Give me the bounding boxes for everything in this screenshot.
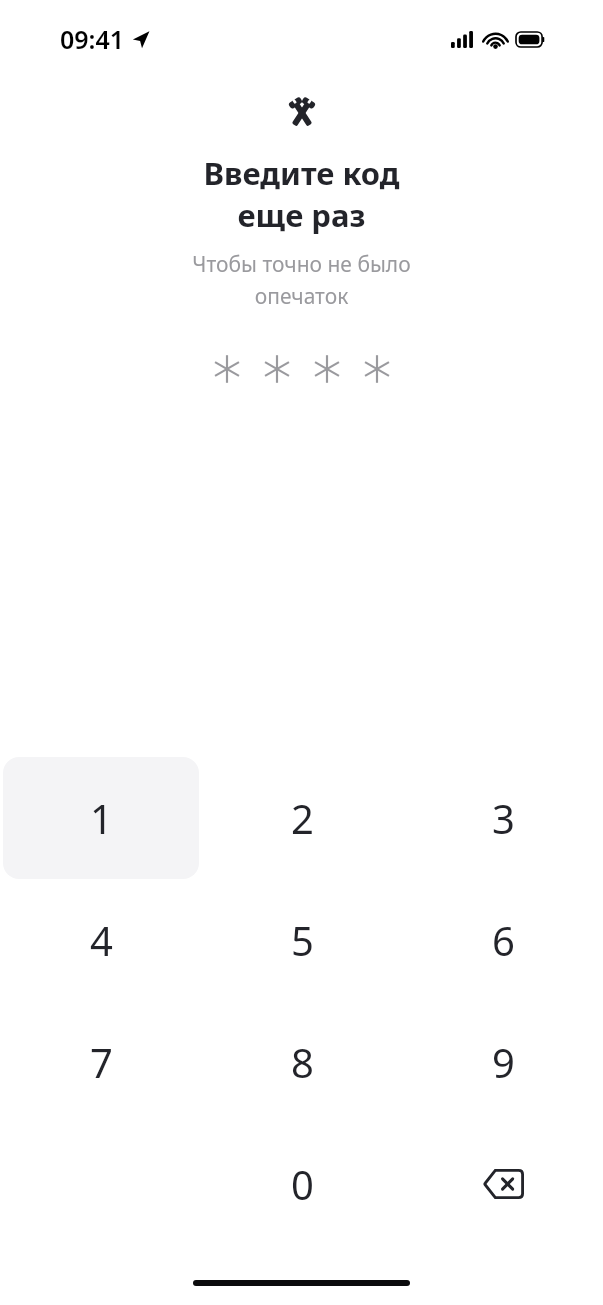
button[interactable]: 3 [405, 757, 601, 879]
staticText: 3 [492, 791, 515, 845]
button[interactable]: 5 [204, 879, 400, 1001]
button[interactable]: 9 [405, 1001, 601, 1123]
staticText: 5 [291, 913, 314, 967]
button[interactable]: Удалить [405, 1123, 601, 1245]
staticText: 4 [90, 913, 113, 967]
staticText: 8 [291, 1035, 314, 1089]
staticText: 1 [90, 791, 113, 845]
button[interactable]: 8 [204, 1001, 400, 1123]
staticText: 9 [492, 1035, 515, 1089]
button[interactable]: 1 [3, 757, 199, 879]
staticText: 0 [291, 1157, 314, 1211]
staticText: 6 [492, 913, 515, 967]
staticText: 09:41 [60, 22, 125, 56]
staticText: Введите код еще раз [203, 152, 400, 236]
button[interactable]: 0 [204, 1123, 400, 1245]
staticText: Чтобы точно не было опечаток [192, 250, 411, 310]
button[interactable]: 4 [3, 879, 199, 1001]
button[interactable]: 6 [405, 879, 601, 1001]
button[interactable]: 2 [204, 757, 400, 879]
staticText: 7 [90, 1035, 113, 1089]
staticText: 2 [291, 791, 314, 845]
button[interactable]: 7 [3, 1001, 199, 1123]
